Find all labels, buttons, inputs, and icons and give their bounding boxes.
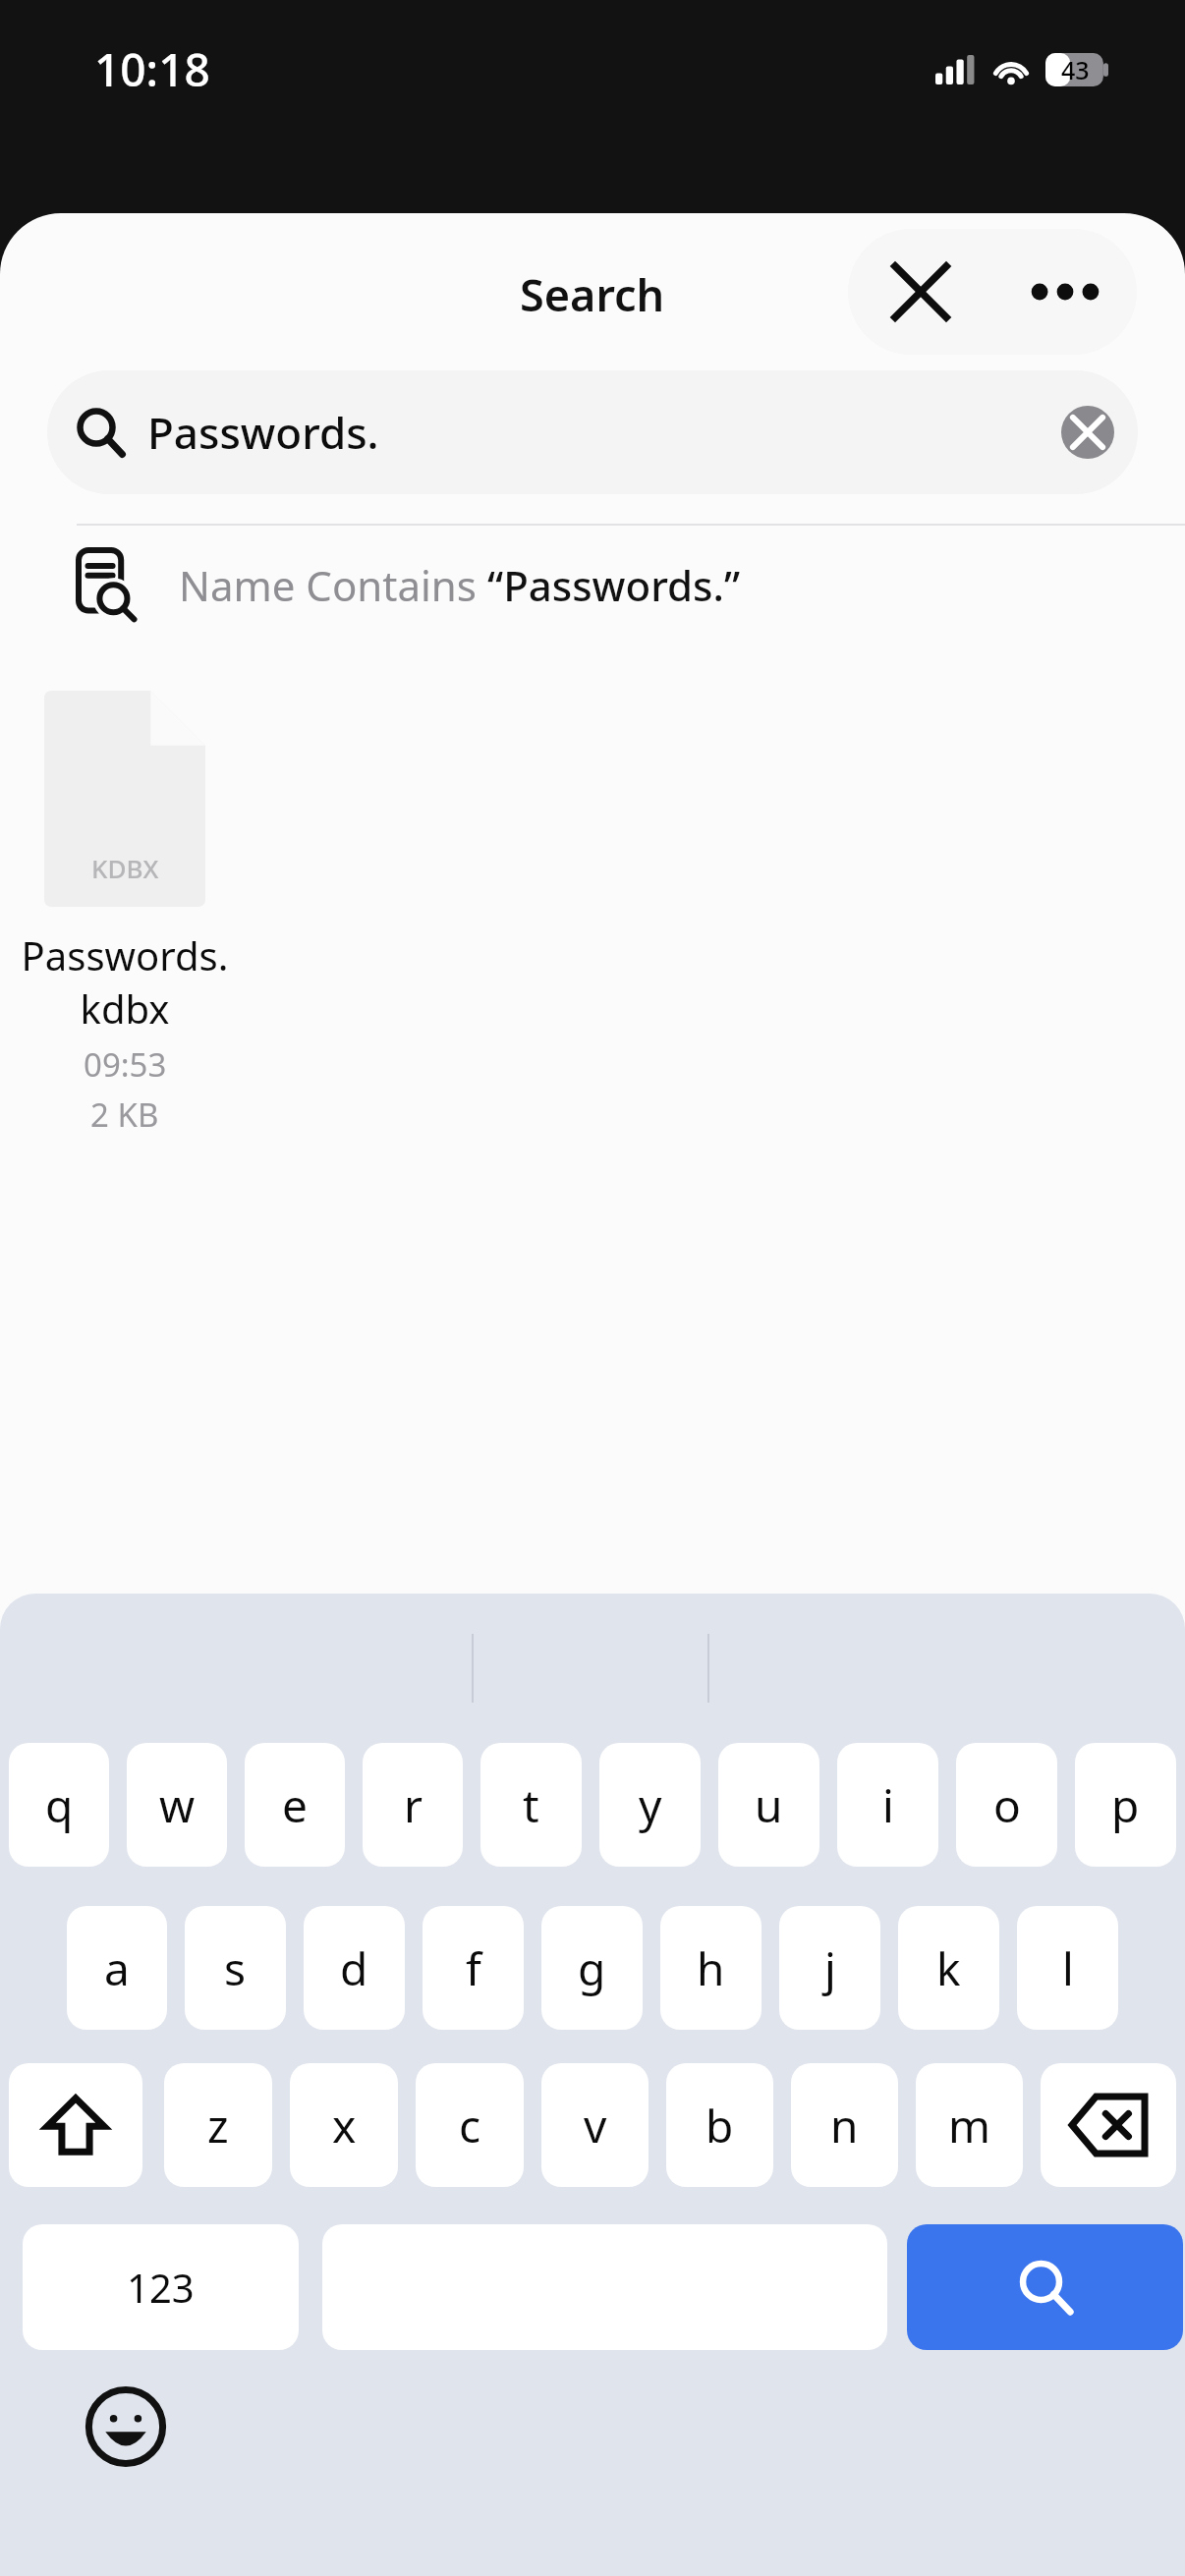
staticText: Search xyxy=(520,264,665,324)
button[interactable]: Space xyxy=(322,2224,887,2350)
staticText: a xyxy=(104,1937,130,1999)
button[interactable]: k xyxy=(898,1906,999,2030)
staticText: 2 KB xyxy=(90,1092,159,1137)
button[interactable]: 123 xyxy=(23,2224,299,2350)
button[interactable]: p xyxy=(1075,1743,1176,1867)
staticText: h xyxy=(697,1937,725,1999)
staticText: x xyxy=(332,2095,357,2156)
staticText: “Passwords.” xyxy=(487,557,741,613)
button[interactable]: Emoji xyxy=(86,2387,165,2466)
button[interactable]: j xyxy=(779,1906,880,2030)
button[interactable]: f xyxy=(423,1906,524,2030)
staticText: 10:18 xyxy=(94,38,210,100)
button[interactable]: h xyxy=(660,1906,762,2030)
staticText: p xyxy=(1111,1774,1140,1836)
staticText: d xyxy=(340,1937,368,1999)
button[interactable]: n xyxy=(791,2063,898,2187)
staticText: l xyxy=(1062,1937,1074,1999)
staticText: g xyxy=(578,1937,606,1999)
button[interactable]: u xyxy=(718,1743,819,1867)
staticText: Name Contains xyxy=(179,557,487,613)
staticText: 123 xyxy=(127,2261,195,2314)
button[interactable]: Shift xyxy=(9,2063,142,2187)
button[interactable]: KDBX xyxy=(14,691,236,1137)
staticText: m xyxy=(948,2095,991,2156)
staticText: u xyxy=(755,1774,783,1836)
staticText: z xyxy=(207,2095,229,2156)
button[interactable]: Close xyxy=(848,229,992,355)
button[interactable]: y xyxy=(599,1743,701,1867)
staticText: v xyxy=(584,2095,607,2156)
staticText: j xyxy=(824,1937,836,1999)
button[interactable]: s xyxy=(185,1906,286,2030)
staticText: q xyxy=(45,1774,74,1836)
button[interactable]: d xyxy=(304,1906,405,2030)
staticText: t xyxy=(523,1774,539,1836)
button[interactable]: Backspace xyxy=(1041,2063,1176,2187)
button[interactable]: o xyxy=(956,1743,1057,1867)
button[interactable]: g xyxy=(541,1906,643,2030)
button[interactable]: Passwords. xyxy=(47,370,1138,494)
button[interactable]: b xyxy=(666,2063,773,2187)
button[interactable]: t xyxy=(480,1743,582,1867)
button[interactable]: m xyxy=(916,2063,1023,2187)
button[interactable]: Name Contains xyxy=(0,526,1185,644)
button[interactable]: Clear text xyxy=(1061,406,1114,459)
button[interactable]: c xyxy=(416,2063,524,2187)
staticText: 43 xyxy=(1061,53,1090,86)
button[interactable]: q xyxy=(9,1743,109,1867)
staticText: c xyxy=(459,2095,481,2156)
button[interactable]: x xyxy=(290,2063,398,2187)
staticText: y xyxy=(639,1774,662,1836)
button[interactable]: v xyxy=(541,2063,649,2187)
staticText: k xyxy=(936,1937,961,1999)
button[interactable]: i xyxy=(837,1743,938,1867)
staticText: o xyxy=(993,1774,1021,1836)
button[interactable]: l xyxy=(1017,1906,1118,2030)
button[interactable]: e xyxy=(245,1743,345,1867)
staticText: i xyxy=(882,1774,894,1836)
staticText: Passwords.kdbx xyxy=(14,928,236,1035)
staticText: f xyxy=(466,1937,481,1999)
button[interactable]: z xyxy=(164,2063,272,2187)
staticText: e xyxy=(282,1774,308,1836)
staticText: KDBX xyxy=(91,851,159,885)
staticText: Passwords. xyxy=(147,403,1061,462)
button[interactable]: More options xyxy=(992,229,1137,355)
button[interactable]: r xyxy=(363,1743,463,1867)
staticText: b xyxy=(705,2095,734,2156)
staticText: s xyxy=(224,1937,247,1999)
button[interactable]: a xyxy=(67,1906,167,2030)
staticText: 09:53 xyxy=(84,1042,167,1087)
button[interactable]: Search xyxy=(907,2224,1183,2350)
staticText: r xyxy=(404,1774,423,1836)
staticText: n xyxy=(830,2095,859,2156)
staticText: w xyxy=(159,1774,196,1836)
button[interactable]: w xyxy=(127,1743,227,1867)
